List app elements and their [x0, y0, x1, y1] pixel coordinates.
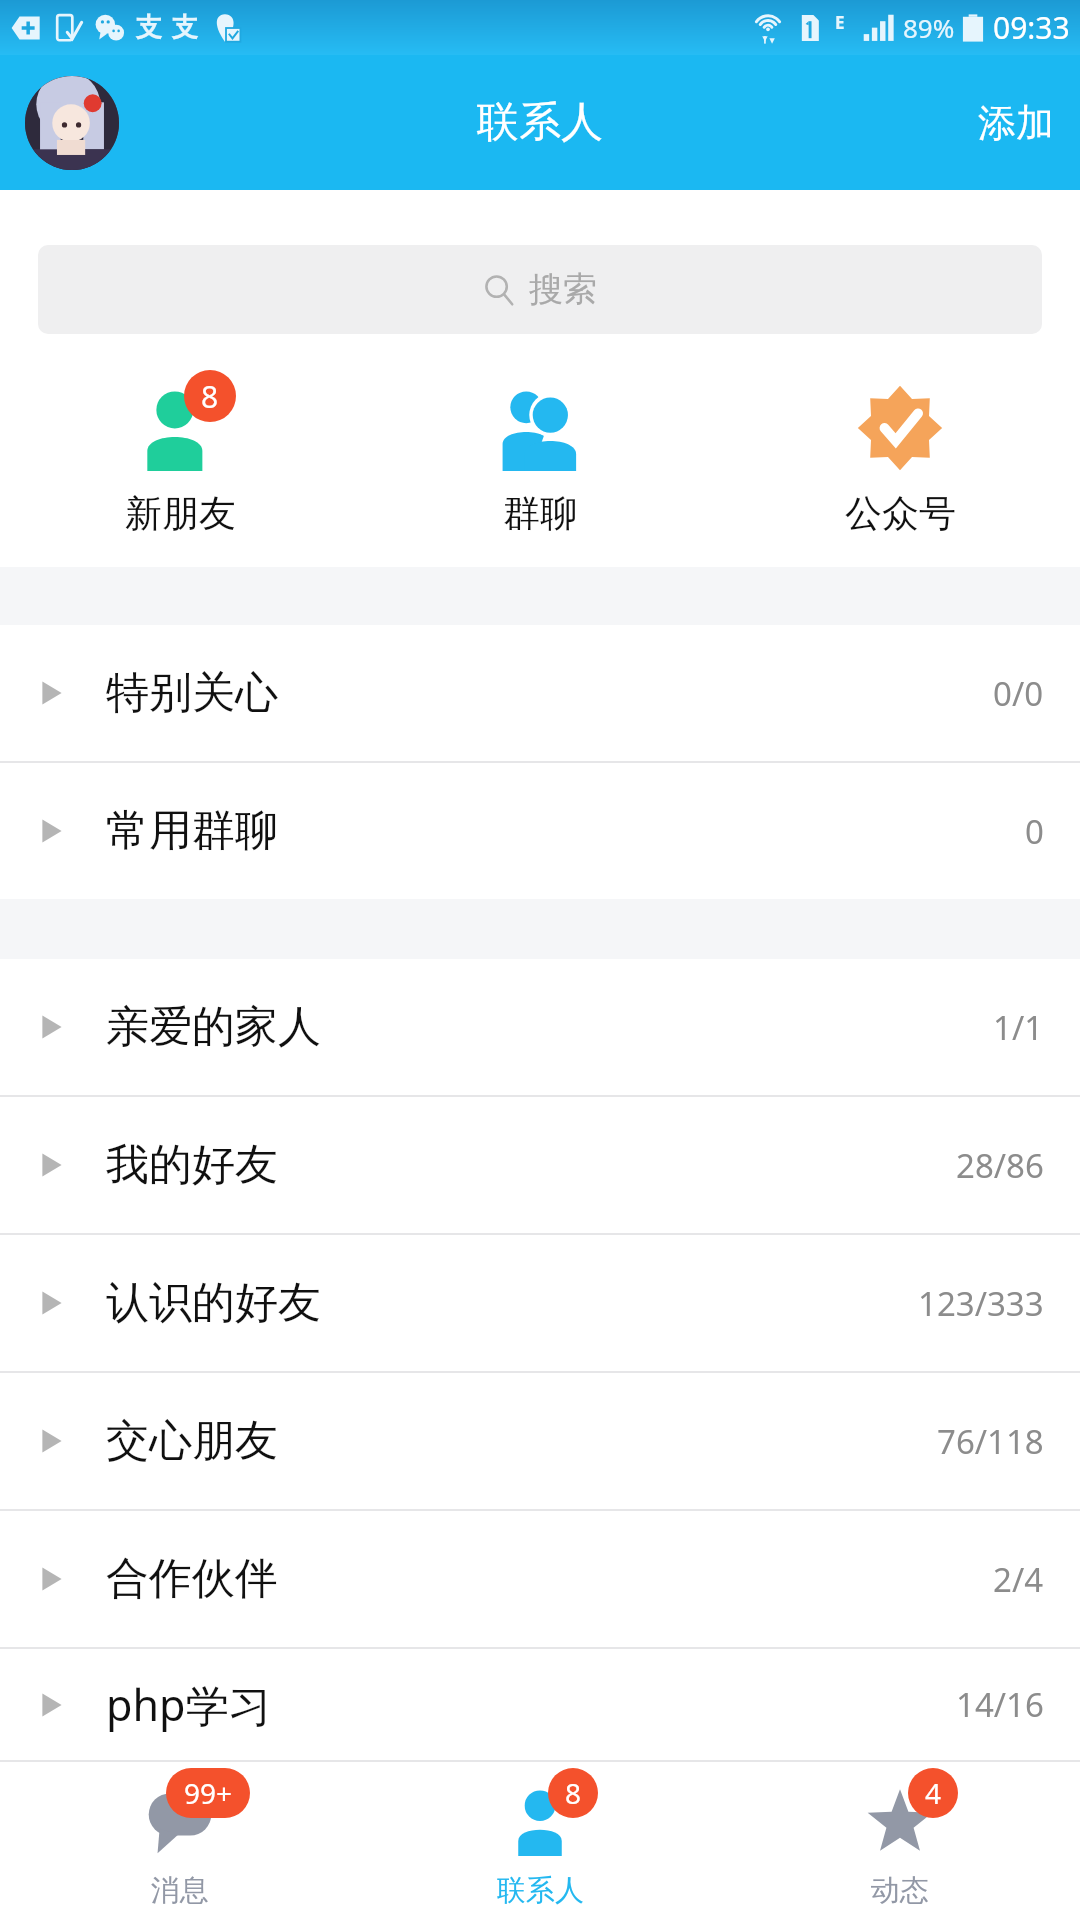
staticText: php学习 [106, 1675, 272, 1734]
staticText: 联系人 [497, 1872, 584, 1909]
staticText: 特别关心 [106, 666, 278, 720]
staticText: 支 [172, 11, 198, 44]
button[interactable]: 搜索 [38, 245, 1042, 334]
staticText: 0/0 [993, 671, 1044, 716]
button[interactable]: 常用群聊 [0, 763, 1080, 899]
button[interactable]: Feed [720, 1762, 1080, 1920]
button[interactable]: 交心朋友 [0, 1373, 1080, 1509]
staticText: 常用群聊 [106, 804, 278, 858]
button[interactable]: Messages [0, 1762, 360, 1920]
staticText: 8 [565, 1774, 582, 1812]
button[interactable]: Group chats [360, 366, 720, 541]
staticText: 合作伙伴 [106, 1552, 278, 1606]
button[interactable]: 添加 [952, 83, 1080, 163]
button[interactable]: Profile avatar [25, 76, 119, 170]
button[interactable]: Official accounts [720, 366, 1080, 541]
staticText: 2/4 [993, 1557, 1044, 1602]
staticText: 123/333 [918, 1281, 1044, 1326]
staticText: 8 [201, 376, 219, 417]
staticText: 4 [925, 1774, 942, 1812]
button[interactable]: 亲爱的家人 [0, 959, 1080, 1095]
staticText: 群聊 [503, 490, 577, 537]
staticText: 添加 [978, 99, 1054, 147]
button[interactable]: 特别关心 [0, 625, 1080, 761]
staticText: 认识的好友 [106, 1276, 321, 1330]
staticText: 亲爱的家人 [106, 1000, 321, 1054]
staticText: 新朋友 [125, 490, 236, 537]
staticText: E [835, 11, 845, 34]
button[interactable]: 我的好友 [0, 1097, 1080, 1233]
button[interactable]: php学习 [0, 1649, 1080, 1760]
staticText: 1/1 [993, 1005, 1044, 1050]
staticText: 搜索 [529, 268, 597, 311]
staticText: 76/118 [937, 1419, 1044, 1464]
staticText: 99+ [184, 1774, 233, 1812]
button[interactable]: New friends [0, 366, 360, 541]
staticText: 交心朋友 [106, 1414, 278, 1468]
staticText: 0 [1025, 809, 1044, 854]
button[interactable]: Contacts [360, 1762, 720, 1920]
staticText: 28/86 [956, 1143, 1044, 1188]
staticText: 09:33 [993, 7, 1070, 48]
button[interactable]: 认识的好友 [0, 1235, 1080, 1371]
staticText: 公众号 [845, 490, 956, 537]
staticText: 消息 [151, 1872, 209, 1909]
button[interactable]: 合作伙伴 [0, 1511, 1080, 1647]
staticText: 89% [903, 10, 955, 45]
staticText: 我的好友 [106, 1138, 278, 1192]
staticText: 联系人 [477, 96, 603, 149]
staticText: 动态 [871, 1872, 929, 1909]
staticText: 14/16 [956, 1682, 1044, 1727]
staticText: 支 [136, 11, 162, 44]
